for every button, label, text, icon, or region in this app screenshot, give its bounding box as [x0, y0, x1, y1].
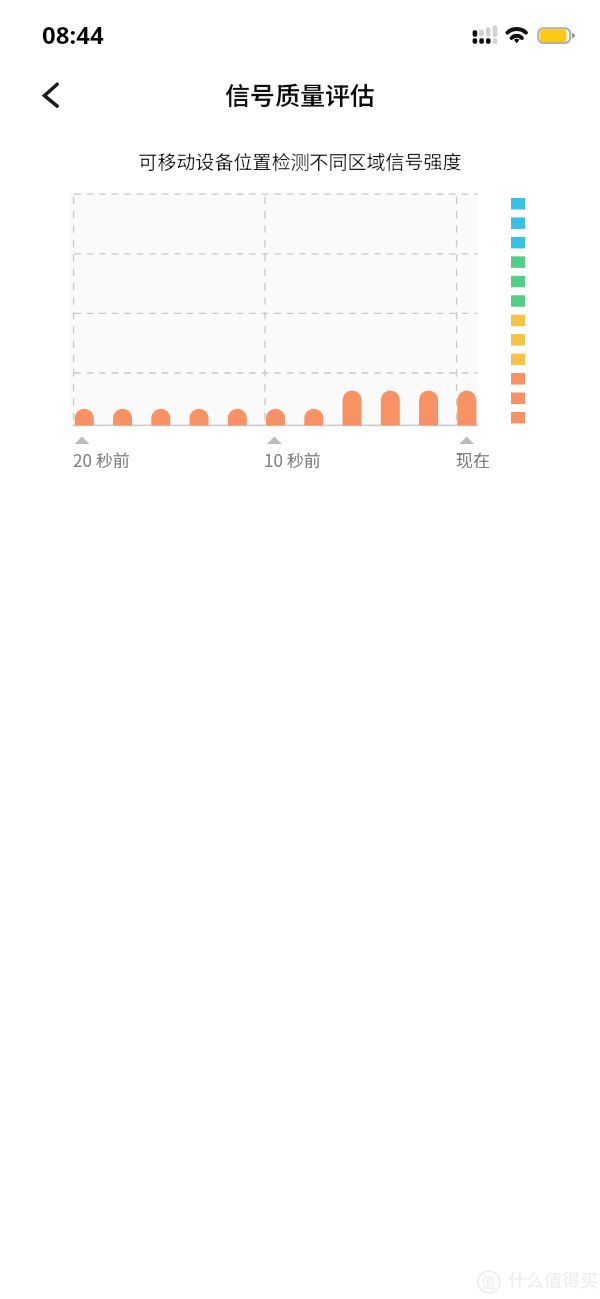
staticText: 可移动设备位置检测不同区域信号强度	[0, 147, 600, 175]
staticText: 现在	[456, 447, 490, 472]
staticText: 10 秒前	[264, 447, 321, 472]
staticText: 值	[481, 1271, 497, 1293]
button[interactable]: Back	[25, 74, 69, 118]
staticText: 20 秒前	[73, 447, 130, 472]
staticText: 什么值得买	[508, 1266, 598, 1292]
staticText: 08:44	[42, 18, 104, 51]
staticText: 信号质量评估	[0, 76, 600, 112]
